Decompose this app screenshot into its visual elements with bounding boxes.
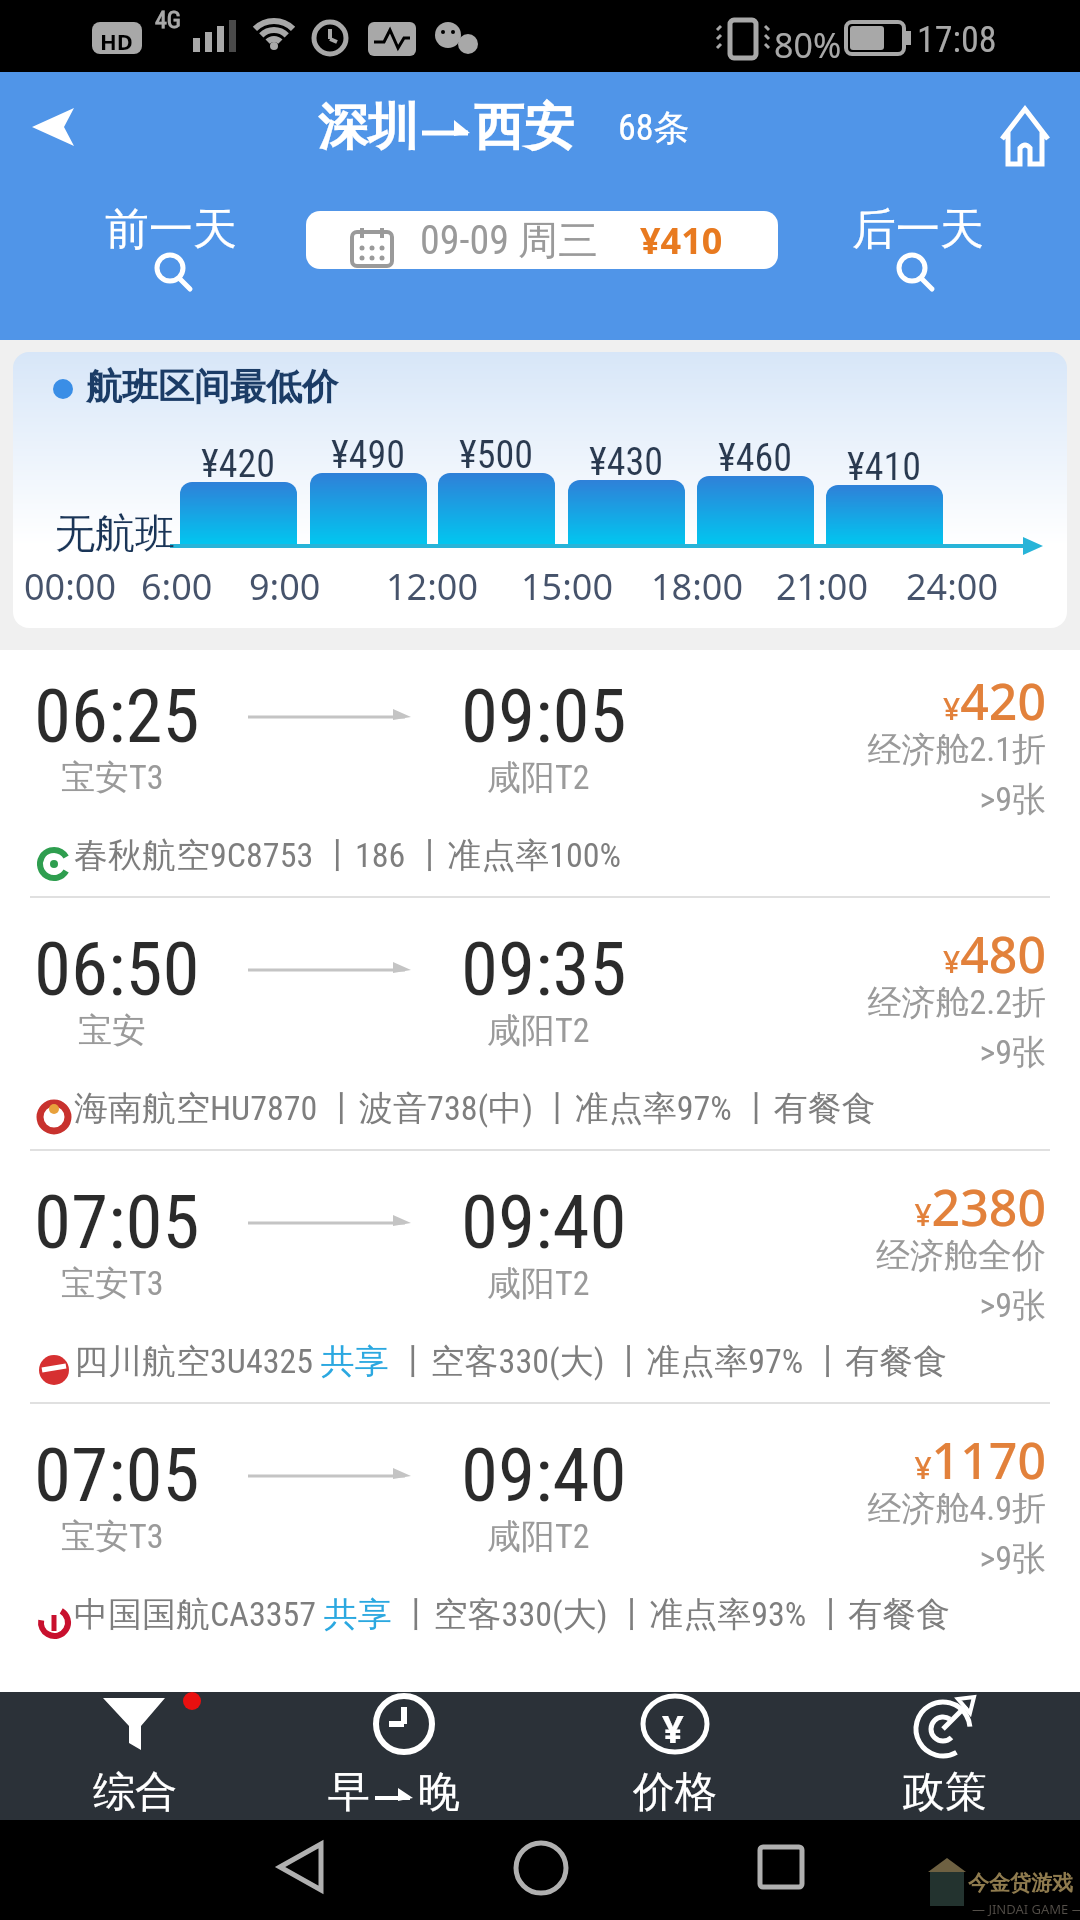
staticText: >9张 [979, 1031, 1046, 1074]
staticText: 09:40 [461, 1178, 627, 1266]
staticText: 24:00 [906, 562, 999, 611]
button[interactable]: 07:05 [0, 1156, 1080, 1409]
staticText: 06:25 [34, 672, 200, 760]
staticText: 18:00 [651, 562, 744, 611]
staticText: 咸阳T2 [487, 756, 590, 799]
staticText: 航班区间最低价 [86, 364, 338, 409]
button[interactable] [0, 72, 110, 182]
staticText: 早 [328, 1766, 370, 1819]
staticText: 深圳 [318, 96, 418, 159]
staticText: 咸阳T2 [487, 1515, 590, 1558]
button[interactable]: 综合 [0, 1692, 270, 1820]
button[interactable]: 后一天 [820, 196, 1000, 316]
staticText: 后一天 [852, 202, 984, 257]
staticText: 宝安T3 [61, 756, 164, 799]
staticText: ¥2380 [914, 1173, 1046, 1235]
staticText: >9张 [979, 778, 1046, 821]
staticText: 宝安T3 [61, 1262, 164, 1305]
staticText: ¥460 [718, 436, 792, 481]
staticText: 经济舱全价 [876, 1234, 1046, 1277]
button[interactable]: 早 [270, 1692, 540, 1820]
staticText: >9张 [979, 1284, 1046, 1327]
staticText: 咸阳T2 [487, 1009, 590, 1052]
staticText: 07:05 [34, 1178, 200, 1266]
button[interactable]: 07:05 [0, 1409, 1080, 1662]
button[interactable] [980, 92, 1070, 182]
staticText: HD [100, 26, 133, 56]
staticText: 政策 [903, 1766, 987, 1819]
staticText: 价格 [633, 1766, 717, 1819]
staticText: 晚 [418, 1766, 460, 1819]
staticText: 80% [774, 22, 842, 68]
staticText: 四川航空3U4325 共享 丨空客330(大) 丨准点率97% 丨有餐食 [74, 1340, 948, 1383]
staticText: 15:00 [521, 562, 614, 611]
staticText: ¥500 [459, 433, 533, 478]
staticText: 17:08 [917, 19, 997, 61]
staticText: 宝安T3 [61, 1515, 164, 1558]
staticText: >9张 [979, 1537, 1046, 1580]
staticText: 咸阳T2 [487, 1262, 590, 1305]
staticText: 00:00 [24, 562, 117, 611]
staticText: — JINDAI GAME — [972, 1900, 1080, 1918]
button[interactable]: 前一天 [80, 196, 260, 316]
staticText: ¥420 [201, 442, 275, 487]
button[interactable]: ¥ [540, 1692, 810, 1820]
staticText: 今金贷游戏 [968, 1870, 1073, 1896]
staticText: ¥1170 [914, 1426, 1046, 1488]
staticText: ¥ [662, 1702, 684, 1754]
staticText: 09:35 [461, 925, 627, 1013]
staticText: 宝安 [78, 1009, 146, 1052]
staticText: 春秋航空9C8753 丨186 丨准点率100% [74, 834, 622, 877]
button[interactable]: 政策 [810, 1692, 1080, 1820]
staticText: 09-09 周三 [420, 215, 599, 265]
staticText: ¥480 [943, 920, 1046, 982]
staticText: 12:00 [386, 562, 479, 611]
staticText: 无航班 [55, 508, 175, 558]
staticText: 综合 [93, 1766, 177, 1819]
staticText: 09:05 [461, 672, 627, 760]
staticText: 西安 [474, 96, 574, 159]
button[interactable]: 06:50 [0, 903, 1080, 1156]
staticText: 经济舱2.2折 [867, 981, 1046, 1024]
staticText: ¥490 [331, 433, 405, 478]
staticText: 6:00 [141, 562, 213, 611]
staticText: 21:00 [776, 562, 869, 611]
staticText: 中国国航CA3357 共享 丨空客330(大) 丨准点率93% 丨有餐食 [74, 1593, 951, 1636]
staticText: ¥410 [640, 216, 723, 265]
staticText: 9:00 [249, 562, 321, 611]
staticText: 经济舱4.9折 [867, 1487, 1046, 1530]
staticText: 09:40 [461, 1431, 627, 1519]
staticText: 海南航空HU7870 丨波音738(中) 丨准点率97% 丨有餐食 [74, 1087, 876, 1130]
staticText: ¥420 [943, 667, 1046, 729]
button[interactable]: 09-09 周三 [306, 211, 778, 269]
staticText: 68条 [618, 105, 690, 150]
staticText: 4G [155, 6, 182, 34]
staticText: 07:05 [34, 1431, 200, 1519]
staticText: 06:50 [34, 925, 200, 1013]
staticText: 前一天 [105, 202, 237, 257]
staticText: ¥430 [589, 440, 663, 485]
button[interactable]: 06:25 [0, 650, 1080, 903]
staticText: 经济舱2.1折 [867, 728, 1046, 771]
staticText: ¥410 [847, 445, 921, 490]
